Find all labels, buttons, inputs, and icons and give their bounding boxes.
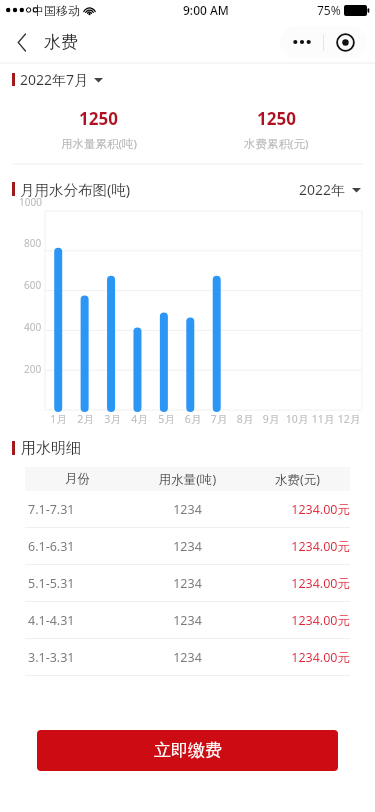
staticText: 200 xyxy=(24,362,42,376)
staticText: 水费累积(元) xyxy=(244,136,309,152)
staticText: 水费(元) xyxy=(245,471,350,488)
button[interactable]: 4.1-4.31 xyxy=(25,602,350,638)
staticText: 1234.00元 xyxy=(245,575,350,592)
button[interactable]: 2022年 xyxy=(299,180,361,199)
staticText: 1234 xyxy=(130,575,245,592)
staticText: 400 xyxy=(24,320,42,334)
staticText: 1234.00元 xyxy=(245,649,350,666)
staticText: 11月 xyxy=(310,412,336,426)
staticText: 1234.00元 xyxy=(245,612,350,629)
button[interactable]: 立即缴费 xyxy=(37,730,338,771)
staticText: 月份 xyxy=(25,471,130,487)
staticText: 水费 xyxy=(44,32,78,53)
staticText: 9月 xyxy=(258,412,284,426)
staticText: 9:00 AM xyxy=(183,2,229,18)
staticText: 1234 xyxy=(130,649,245,666)
staticText: 中国移动 xyxy=(32,3,80,18)
staticText: 7.1-7.31 xyxy=(28,501,130,518)
staticText: 1234.00元 xyxy=(245,501,350,518)
staticText: 用水量(吨) xyxy=(130,471,245,488)
staticText: 5.1-5.31 xyxy=(28,575,130,592)
staticText: 6.1-6.31 xyxy=(28,538,130,555)
button[interactable]: 3.1-3.31 xyxy=(25,639,350,675)
staticText: 5月 xyxy=(153,412,180,426)
staticText: 1250 xyxy=(79,107,118,130)
staticText: 4月 xyxy=(126,412,153,426)
button[interactable]: 7.1-7.31 xyxy=(25,491,350,527)
staticText: 1234 xyxy=(130,501,245,518)
button[interactable]: 更多 xyxy=(280,26,323,58)
staticText: 用水明细 xyxy=(21,439,81,458)
staticText: 1000 xyxy=(19,195,42,209)
staticText: 6月 xyxy=(180,412,206,426)
staticText: 3月 xyxy=(99,412,126,426)
button[interactable]: 1250 xyxy=(10,95,365,164)
button[interactable]: 5.1-5.31 xyxy=(25,565,350,601)
staticText: 75% xyxy=(317,2,341,18)
staticText: 4.1-4.31 xyxy=(28,612,130,629)
staticText: 2022年 xyxy=(299,180,346,199)
staticText: 用水量累积(吨) xyxy=(61,136,137,152)
staticText: 1250 xyxy=(257,107,296,130)
staticText: 1234.00元 xyxy=(245,538,350,555)
staticText: 2月 xyxy=(72,412,99,426)
other: 小程序菜单 xyxy=(280,26,367,58)
staticText: 1234 xyxy=(130,612,245,629)
staticText: 10月 xyxy=(284,412,310,426)
staticText: 8月 xyxy=(232,412,258,426)
staticText: 600 xyxy=(24,278,42,292)
button[interactable]: 2022年7月 xyxy=(0,64,375,95)
button[interactable]: 关闭 xyxy=(324,26,367,58)
staticText: 7月 xyxy=(206,412,232,426)
staticText: 12月 xyxy=(336,412,362,426)
staticText: 1234 xyxy=(130,538,245,555)
staticText: 立即缴费 xyxy=(154,740,222,761)
staticText: 3.1-3.31 xyxy=(28,649,130,666)
staticText: 2022年7月 xyxy=(20,70,89,89)
button[interactable]: 返回 xyxy=(4,24,40,60)
staticText: 1月 xyxy=(45,412,72,426)
button[interactable]: 6.1-6.31 xyxy=(25,528,350,564)
staticText: 800 xyxy=(24,236,42,250)
staticText: 月用水分布图(吨) xyxy=(20,179,131,199)
